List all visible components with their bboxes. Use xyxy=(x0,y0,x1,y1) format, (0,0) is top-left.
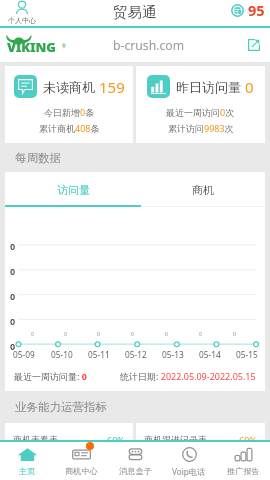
staticText: 商机跟进记录表 xyxy=(144,434,207,440)
staticText: 统计日期: 2022.05.09-2022.05.15 xyxy=(120,370,256,382)
staticText: 贸易通 xyxy=(113,3,157,21)
staticText: 每周数据 xyxy=(15,151,61,165)
staticText: 0 xyxy=(10,265,16,277)
staticText: Voip电话 xyxy=(172,466,206,477)
staticText: 主页 xyxy=(19,466,36,476)
staticText: 0 xyxy=(245,77,254,97)
staticText: 0 xyxy=(31,331,34,338)
staticText: 0 xyxy=(165,331,168,338)
staticText: 0 xyxy=(64,331,67,338)
button[interactable]: 商机中心 xyxy=(54,442,108,480)
button[interactable]: Voip电话 xyxy=(162,442,216,480)
staticText: 0 xyxy=(131,331,134,338)
staticText: 0 xyxy=(233,331,236,338)
button[interactable]: 消息盒子 xyxy=(108,442,162,480)
button[interactable]: 昨日访问量 xyxy=(136,66,265,143)
staticText: 0 xyxy=(10,240,16,252)
button[interactable]: 个人中心 xyxy=(8,1,36,25)
staticText: 消息盒子 xyxy=(119,466,152,476)
staticText: 访问量 xyxy=(57,183,90,197)
button[interactable]: 推广报告 xyxy=(216,442,270,480)
staticText: 累计商机408条 xyxy=(39,122,100,134)
button[interactable]: 打开网站 xyxy=(248,39,260,51)
staticText: 05-15 xyxy=(236,349,258,360)
staticText: 商机 xyxy=(192,183,214,197)
staticText: 0 xyxy=(10,290,16,302)
staticText: 最近一周访问量: 0 xyxy=(14,370,87,382)
staticText: b-crush.com xyxy=(113,37,185,54)
staticText: 商机表看表 xyxy=(13,434,58,440)
button[interactable]: 商机 xyxy=(141,172,265,205)
button[interactable]: 访问量 xyxy=(5,172,141,205)
staticText: 0 xyxy=(10,315,16,327)
staticText: 05-13 xyxy=(162,349,184,360)
staticText: 0 xyxy=(10,340,16,352)
staticText: 05-10 xyxy=(51,349,73,360)
staticText: 累计访问9983次 xyxy=(168,122,234,134)
staticText: VIKING xyxy=(7,38,56,56)
staticText: 95 xyxy=(248,0,265,20)
staticText: 昨日访问量 xyxy=(176,79,241,95)
staticText: 05-12 xyxy=(125,349,147,360)
staticText: 05-09 xyxy=(13,349,35,360)
button[interactable]: 未读商机 xyxy=(5,66,133,143)
staticText: 推广报告 xyxy=(227,466,260,476)
staticText: 个人中心 xyxy=(8,16,36,25)
staticText: 159 xyxy=(99,77,125,97)
staticText: 60% xyxy=(107,434,125,440)
button[interactable]: 商机表看表 xyxy=(5,423,133,440)
staticText: 0 xyxy=(199,331,202,338)
staticText: 05-11 xyxy=(88,349,110,360)
other: 积分 xyxy=(231,4,244,17)
staticText: ® xyxy=(62,43,66,49)
staticText: 今日新增0条 xyxy=(44,106,95,118)
staticText: 60% xyxy=(239,434,257,440)
staticText: 未读商机 xyxy=(43,79,95,95)
staticText: 0 xyxy=(97,331,100,338)
staticText: 业务能力运营指标 xyxy=(15,400,107,414)
button[interactable]: 积分 xyxy=(231,0,265,20)
staticText: 05-14 xyxy=(199,349,221,360)
staticText: 最近一周访问0次 xyxy=(166,106,235,118)
button[interactable]: 主页 xyxy=(0,442,54,480)
button[interactable]: 商机跟进记录表 xyxy=(136,423,265,440)
staticText: 商机中心 xyxy=(65,466,98,476)
